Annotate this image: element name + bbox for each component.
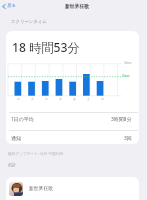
staticText: 通知 <box>11 135 21 141</box>
staticText: 土 <box>87 97 90 101</box>
staticText: 新世界狂歌 <box>29 185 53 191</box>
button[interactable]: アプリアイコン <box>6 177 139 200</box>
staticText: 1日の平均 <box>11 116 34 123</box>
staticText: 18 時間53分 <box>12 39 80 56</box>
staticText: 最終アップデート: 今日 午後9:50 <box>8 151 63 156</box>
button[interactable]: 通知 <box>6 130 139 144</box>
button[interactable]: 1日の平均 <box>6 113 139 130</box>
staticText: 合計 <box>8 162 17 167</box>
staticText: 金 <box>73 97 76 101</box>
staticText: 火 <box>31 97 34 101</box>
staticText: 日 <box>101 97 104 101</box>
staticText: 戻る <box>7 3 16 9</box>
staticText: 4時間 <box>124 61 132 65</box>
staticText: 月 <box>17 97 20 101</box>
staticText: 水 <box>45 97 48 101</box>
staticText: 2時間 <box>122 74 130 78</box>
staticText: 3回 <box>124 135 132 142</box>
other: アプリアイコン <box>9 182 23 196</box>
staticText: 3時間8分 <box>111 116 132 123</box>
staticText: 新世界狂歌 <box>65 3 89 9</box>
button[interactable]: 戻る <box>1 2 17 10</box>
staticText: 木 <box>59 97 62 101</box>
staticText: スクリーンタイム <box>11 19 47 25</box>
